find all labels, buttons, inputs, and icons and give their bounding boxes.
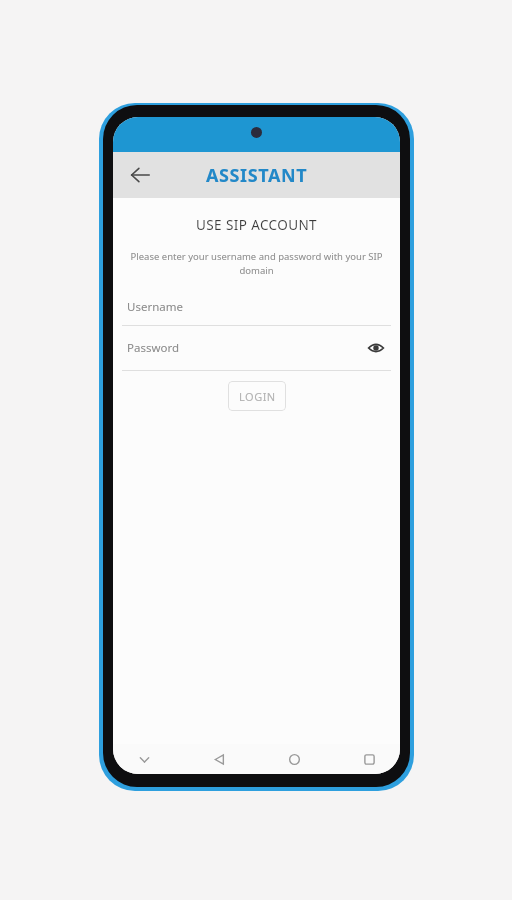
button[interactable]: Password	[113, 326, 400, 370]
button[interactable]: Hide keyboard	[131, 746, 157, 772]
button[interactable]: Back	[206, 746, 232, 772]
staticText: Password	[127, 340, 180, 356]
staticText: USE SIP ACCOUNT	[113, 216, 400, 234]
button[interactable]: Show password	[362, 334, 390, 362]
staticText: Username	[127, 299, 183, 315]
staticText: Please enter your username and password …	[127, 250, 386, 277]
button[interactable]: Back	[119, 154, 161, 196]
staticText: LOGIN	[239, 389, 276, 404]
button[interactable]: Recent apps	[356, 746, 382, 772]
button[interactable]: Home	[281, 746, 307, 772]
button[interactable]: LOGIN	[228, 381, 286, 411]
button[interactable]: Username	[113, 289, 400, 325]
staticText: ASSISTANT	[206, 163, 308, 188]
